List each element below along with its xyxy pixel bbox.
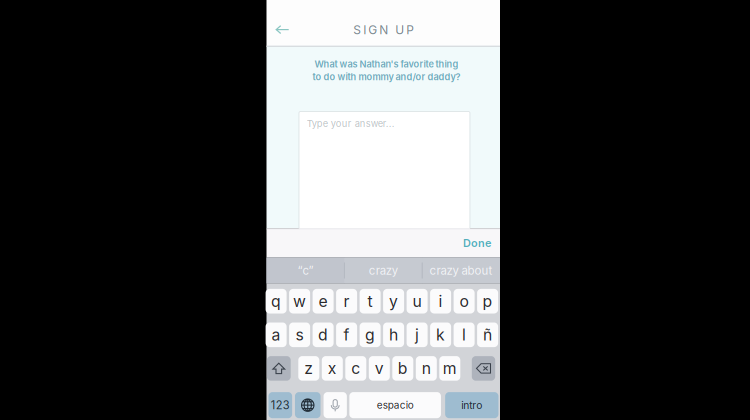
button[interactable]: intro bbox=[445, 392, 498, 418]
button[interactable]: Delete bbox=[472, 356, 495, 381]
staticText: z bbox=[304, 359, 313, 378]
button[interactable]: “c” bbox=[266, 257, 344, 283]
staticText: y bbox=[389, 292, 398, 311]
button[interactable]: espacio bbox=[349, 392, 441, 418]
button[interactable]: m bbox=[439, 356, 460, 381]
button[interactable]: c bbox=[345, 356, 366, 381]
button[interactable]: d bbox=[313, 322, 334, 347]
staticText: crazy about bbox=[430, 264, 493, 277]
button[interactable]: q bbox=[266, 289, 287, 313]
staticText: d bbox=[318, 325, 328, 344]
staticText: g bbox=[365, 325, 375, 344]
staticText: a bbox=[272, 325, 281, 344]
staticText: q bbox=[271, 292, 281, 311]
staticText: w bbox=[293, 292, 306, 311]
button[interactable]: Next keyboard bbox=[295, 392, 320, 418]
staticText: v bbox=[375, 359, 384, 378]
button[interactable]: p bbox=[477, 289, 498, 313]
staticText: b bbox=[398, 359, 408, 378]
button[interactable]: e bbox=[313, 289, 334, 313]
staticText: intro bbox=[461, 399, 482, 411]
staticText: u bbox=[413, 292, 422, 311]
staticText: x bbox=[328, 359, 337, 378]
staticText: j bbox=[415, 325, 419, 344]
staticText: f bbox=[344, 325, 350, 344]
staticText: m bbox=[443, 359, 457, 378]
button[interactable]: 123 bbox=[268, 392, 292, 418]
staticText: p bbox=[483, 292, 493, 311]
staticText: k bbox=[436, 325, 445, 344]
button[interactable]: u bbox=[407, 289, 428, 313]
button[interactable]: r bbox=[336, 289, 357, 313]
staticText: “c” bbox=[297, 264, 313, 277]
staticText: 123 bbox=[271, 398, 290, 412]
button[interactable]: t bbox=[360, 289, 381, 313]
button[interactable]: o bbox=[454, 289, 475, 313]
button[interactable]: s bbox=[289, 322, 310, 347]
button[interactable]: l bbox=[454, 322, 475, 347]
button[interactable]: Shift bbox=[267, 356, 291, 381]
staticText: i bbox=[439, 292, 443, 311]
button[interactable]: g bbox=[360, 322, 381, 347]
staticText: o bbox=[460, 292, 469, 311]
staticText: What was Nathan's favorite thing bbox=[314, 59, 458, 70]
button[interactable]: x bbox=[322, 356, 343, 381]
button[interactable]: Type your answer... bbox=[299, 111, 470, 229]
staticText: Type your answer... bbox=[307, 118, 395, 129]
staticText: to do with mommy and/or daddy? bbox=[312, 71, 460, 82]
staticText: Done bbox=[463, 236, 491, 250]
button[interactable]: v bbox=[369, 356, 390, 381]
staticText: r bbox=[344, 292, 350, 311]
button[interactable]: i bbox=[430, 289, 451, 313]
button[interactable]: Back bbox=[267, 16, 297, 44]
button[interactable]: y bbox=[383, 289, 404, 313]
staticText: crazy bbox=[369, 264, 398, 277]
staticText: n bbox=[422, 359, 431, 378]
button[interactable]: z bbox=[298, 356, 319, 381]
staticText: t bbox=[368, 292, 373, 311]
staticText: espacio bbox=[377, 399, 414, 411]
button[interactable]: w bbox=[289, 289, 310, 313]
button[interactable]: f bbox=[336, 322, 357, 347]
button[interactable]: crazy about bbox=[422, 257, 500, 283]
staticText: l bbox=[462, 325, 466, 344]
button[interactable]: k bbox=[430, 322, 451, 347]
button[interactable]: j bbox=[407, 322, 428, 347]
button[interactable]: n bbox=[416, 356, 437, 381]
staticText: S I G N U P bbox=[353, 22, 414, 37]
button[interactable]: ñ bbox=[477, 322, 498, 347]
button[interactable]: b bbox=[392, 356, 413, 381]
staticText: h bbox=[389, 325, 398, 344]
button[interactable]: h bbox=[383, 322, 404, 347]
staticText: e bbox=[319, 292, 328, 311]
button[interactable]: Done bbox=[454, 229, 500, 257]
button[interactable]: crazy bbox=[344, 257, 422, 283]
button[interactable]: a bbox=[266, 322, 287, 347]
staticText: c bbox=[351, 359, 360, 378]
button[interactable]: Dictate bbox=[324, 392, 347, 418]
staticText: ñ bbox=[483, 325, 492, 344]
staticText: s bbox=[296, 325, 304, 344]
